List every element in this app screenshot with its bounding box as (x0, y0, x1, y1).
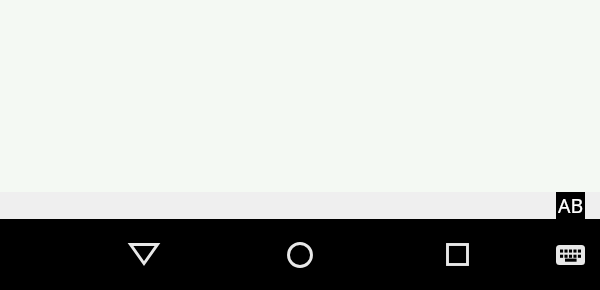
button[interactable]: Recent apps (427, 219, 488, 290)
button[interactable]: Change keyboard (541, 219, 600, 290)
button[interactable]: Back (113, 219, 174, 290)
button[interactable]: Home (270, 219, 330, 290)
staticText: AB (558, 192, 584, 219)
button[interactable]: AB (556, 192, 585, 219)
